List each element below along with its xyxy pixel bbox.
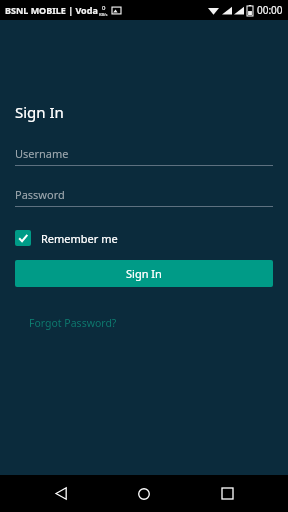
staticText: 0 (102, 4, 106, 12)
staticText: Remember me (41, 231, 118, 246)
staticText: Sign In (15, 102, 64, 122)
button[interactable]: Back (39, 475, 83, 512)
staticText: 00:00 (257, 3, 283, 17)
button[interactable]: Home (122, 475, 166, 512)
staticText: KB/s (99, 12, 108, 17)
button[interactable]: Recent apps (205, 475, 249, 512)
button[interactable]: Sign In (15, 260, 273, 287)
button[interactable]: Forgot Password? (29, 314, 117, 332)
staticText: Password (15, 187, 65, 202)
staticText: Forgot Password? (29, 316, 117, 330)
button[interactable]: Remember me (15, 228, 124, 248)
staticText: Username (15, 146, 69, 161)
staticText: BSNL MOBILE | Voda (5, 4, 98, 16)
staticText: Sign In (126, 266, 162, 281)
